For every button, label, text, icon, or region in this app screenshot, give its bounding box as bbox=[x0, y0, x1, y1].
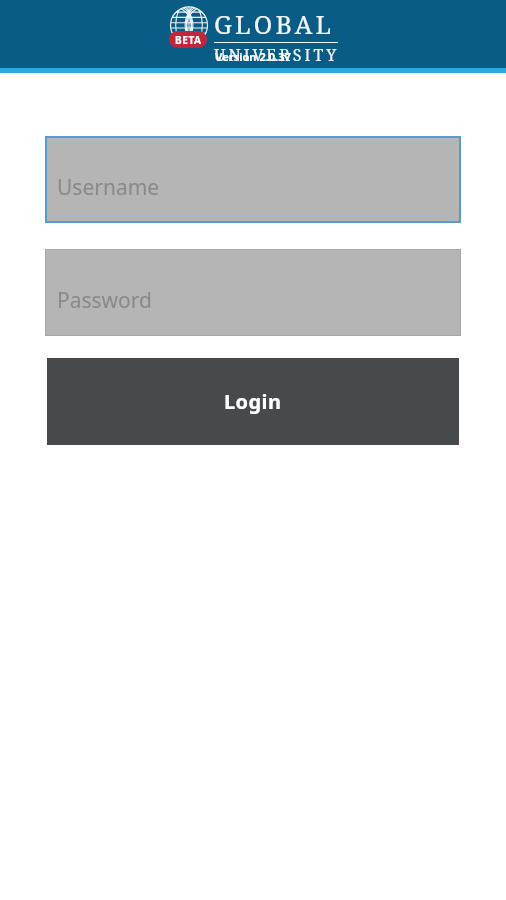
staticText: GLOBAL bbox=[214, 7, 335, 41]
staticText: Version 2.0.37 bbox=[215, 49, 291, 64]
staticText: Login bbox=[224, 388, 282, 415]
staticText: Password bbox=[57, 286, 152, 315]
button[interactable]: Login bbox=[47, 358, 459, 445]
staticText: Username bbox=[57, 173, 160, 202]
button[interactable]: Password bbox=[45, 249, 461, 336]
button[interactable]: Username bbox=[45, 136, 461, 223]
staticText: BETA bbox=[175, 33, 202, 47]
staticText: UNIVERSITY bbox=[214, 44, 340, 66]
